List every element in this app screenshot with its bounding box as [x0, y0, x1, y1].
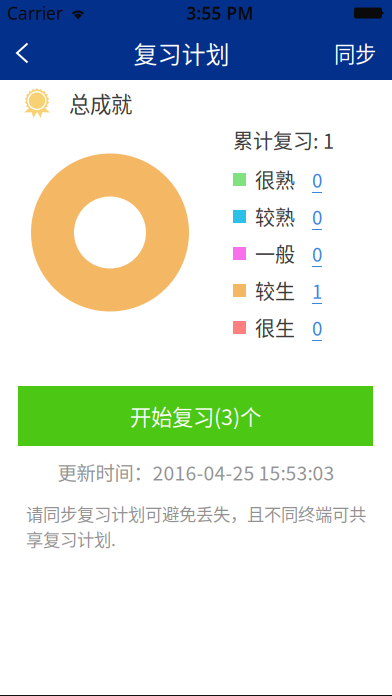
staticText: 同步 — [334, 38, 376, 68]
staticText: 更新时间：2016-04-25 15:53:03 — [57, 458, 334, 486]
staticText: 请同步复习计划可避免丢失，且不同终端可共享复习计划. — [26, 501, 366, 551]
staticText: 较生 — [255, 276, 295, 305]
staticText: 3:55 PM — [186, 1, 253, 24]
staticText: 一般 — [255, 239, 295, 268]
staticText: 开始复习(3)个 — [130, 401, 261, 431]
staticText: 较熟 — [255, 202, 295, 231]
staticText: Carrier — [7, 1, 63, 24]
button[interactable]: 返回 — [0, 26, 47, 80]
staticText: 复习计划 — [133, 36, 229, 70]
staticText: 0 — [312, 203, 322, 230]
staticText: 0 — [312, 240, 322, 267]
staticText: 1 — [312, 277, 322, 304]
staticText: 累计复习: 1 — [233, 125, 334, 154]
staticText: 0 — [312, 314, 322, 341]
staticText: 总成就 — [69, 88, 132, 118]
staticText: 很熟 — [255, 165, 295, 194]
staticText: 0 — [312, 166, 322, 193]
button[interactable]: 开始复习(3)个 — [18, 386, 373, 446]
button[interactable]: 同步 — [316, 26, 392, 80]
staticText: 很生 — [255, 313, 295, 342]
